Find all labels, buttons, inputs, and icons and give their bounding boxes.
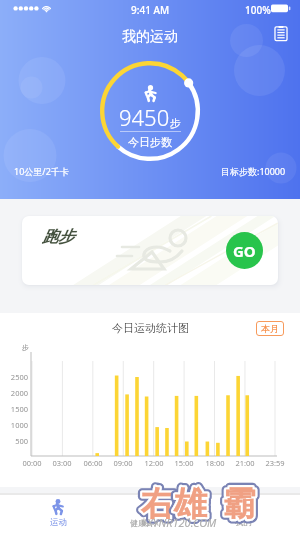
staticText: 今日步数 xyxy=(128,135,172,149)
button[interactable]: GO xyxy=(226,232,263,269)
staticText: 10公里/2千卡 xyxy=(14,165,69,177)
staticText: 步 xyxy=(170,116,181,130)
staticText: 右 xyxy=(141,483,174,525)
staticText: GO xyxy=(233,241,256,261)
staticText: 步 xyxy=(22,343,29,352)
staticText: 500 xyxy=(6,436,28,446)
staticText: 霸 xyxy=(223,483,256,525)
staticText: 霸 xyxy=(223,483,256,525)
staticText: 雄 xyxy=(174,483,207,525)
staticText: 9:41 AM xyxy=(131,3,170,17)
button[interactable]: 健康 xyxy=(115,495,185,528)
staticText: 右 xyxy=(141,483,174,525)
staticText: 1000 xyxy=(6,420,28,430)
staticText: 今日运动统计图 xyxy=(112,321,189,335)
staticText: 雄 xyxy=(174,483,207,525)
staticText: 我的运动 xyxy=(122,28,178,46)
staticText: 100% xyxy=(245,3,271,17)
staticText: 2500 xyxy=(6,372,28,382)
staticText: 09:00 xyxy=(110,458,136,468)
button[interactable]: 运动 xyxy=(23,495,93,528)
staticText: 18:00 xyxy=(202,458,228,468)
staticText: 右 xyxy=(141,483,174,525)
staticText: 目标步数:10000 xyxy=(221,165,286,177)
staticText: 23:59 xyxy=(262,458,288,468)
button[interactable]: 跑步 xyxy=(22,216,278,285)
staticText: 00:00 xyxy=(19,458,45,468)
button[interactable]: 本月 xyxy=(256,321,284,336)
staticText: 03:00 xyxy=(49,458,75,468)
staticText: 雄 xyxy=(174,483,207,525)
staticText: 12:00 xyxy=(141,458,167,468)
button[interactable]: Records xyxy=(269,21,293,45)
staticText: 健康 xyxy=(142,517,159,528)
staticText: 健康 xyxy=(130,518,146,528)
staticText: 运动 xyxy=(50,517,67,528)
staticText: 15:00 xyxy=(171,458,197,468)
staticText: 本月 xyxy=(261,323,279,334)
staticText: 1500 xyxy=(6,404,28,414)
staticText: 9450 xyxy=(119,102,170,132)
staticText: XYNR120.COM xyxy=(147,515,217,530)
staticText: 跑步 xyxy=(42,227,74,247)
staticText: 2000 xyxy=(6,388,28,398)
staticText: 我的 xyxy=(235,517,252,528)
button[interactable]: 我的 xyxy=(208,495,278,528)
staticText: 21:00 xyxy=(232,458,258,468)
staticText: 霸 xyxy=(223,483,256,525)
staticText: 06:00 xyxy=(80,458,106,468)
